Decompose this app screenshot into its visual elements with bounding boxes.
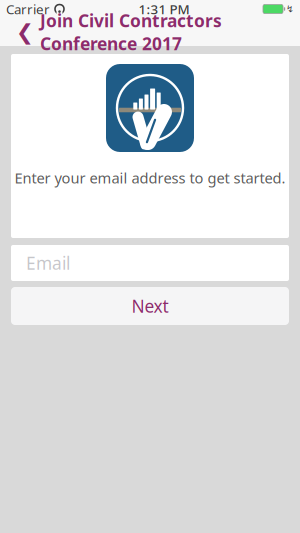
staticText: 1:31 PM — [138, 0, 189, 18]
staticText: Email — [26, 251, 70, 274]
button[interactable]: Next — [11, 287, 289, 325]
staticText: Carrier — [6, 0, 50, 18]
staticText: ❮ — [16, 20, 34, 44]
button[interactable]: Back — [10, 18, 40, 46]
staticText: Join Civil Contractors Conference 2017 — [40, 9, 222, 55]
button[interactable]: Email — [11, 245, 289, 281]
staticText: Enter your email address to get started. — [14, 168, 285, 187]
staticText: Next — [131, 294, 168, 317]
staticText: ↯ — [286, 4, 294, 14]
